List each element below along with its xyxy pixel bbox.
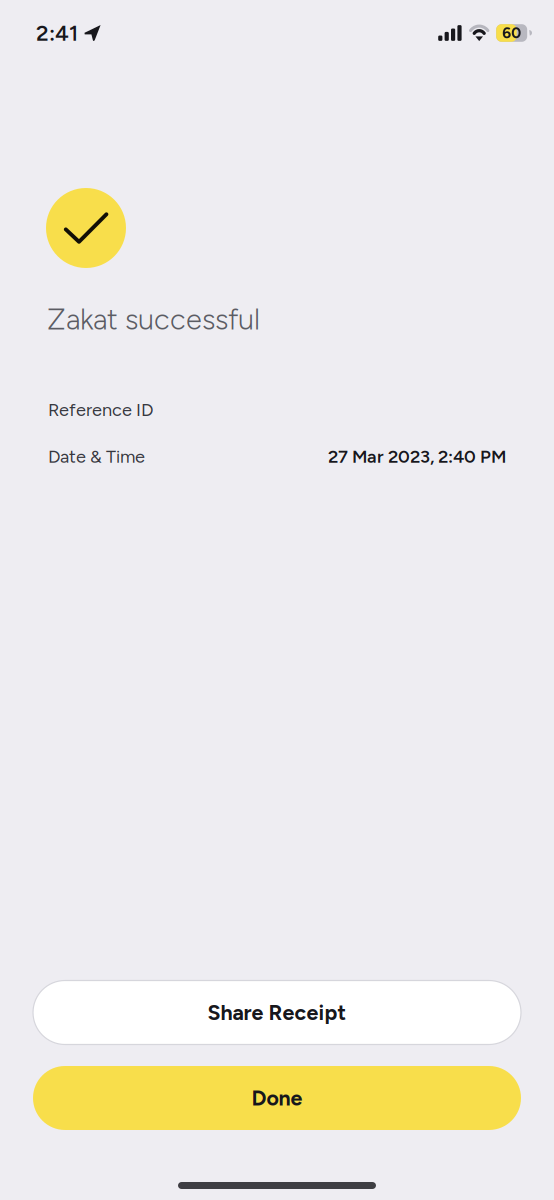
staticText: Share Receipt: [207, 1000, 346, 1025]
staticText: 2:41: [36, 20, 78, 46]
staticText: Date & Time: [48, 445, 145, 467]
staticText: 60: [502, 24, 521, 42]
staticText: Done: [251, 1085, 302, 1111]
staticText: Zakat successful: [47, 302, 260, 337]
staticText: Reference ID: [48, 399, 153, 420]
staticText: 27 Mar 2023, 2:40 PM: [328, 445, 506, 467]
button[interactable]: Done: [33, 1066, 521, 1130]
button[interactable]: Share Receipt: [33, 980, 521, 1044]
